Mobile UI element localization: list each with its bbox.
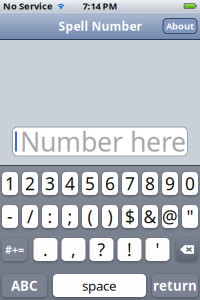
button[interactable]: 6 — [102, 172, 118, 195]
staticText: 6 — [105, 172, 115, 195]
button[interactable]: ; — [62, 205, 78, 228]
button[interactable]: 4 — [62, 172, 78, 195]
staticText: ? — [97, 238, 105, 261]
button[interactable]: 7 — [122, 172, 138, 195]
staticText: : — [47, 205, 52, 228]
staticText: return — [153, 277, 197, 294]
staticText: / — [27, 205, 33, 228]
button[interactable]: - — [2, 205, 18, 228]
button[interactable]: return — [152, 274, 198, 297]
staticText: ; — [67, 205, 72, 228]
staticText: - — [7, 205, 13, 228]
staticText: 5 — [85, 172, 95, 195]
button[interactable]: / — [22, 205, 38, 228]
button[interactable]: ! — [117, 238, 141, 261]
button[interactable]: . — [33, 238, 57, 261]
button[interactable]: ABC — [2, 274, 47, 297]
button[interactable]: 2 — [22, 172, 38, 195]
staticText: " — [186, 205, 193, 228]
button[interactable]: 8 — [142, 172, 158, 195]
button[interactable]: @ — [162, 205, 178, 228]
staticText: Number here — [20, 124, 186, 159]
button[interactable]: Delete — [176, 238, 198, 261]
staticText: #+= — [5, 242, 24, 257]
button[interactable]: ? — [89, 238, 113, 261]
staticText: No Service — [3, 0, 53, 12]
staticText: ! — [127, 238, 132, 261]
button[interactable]: ) — [102, 205, 118, 228]
staticText: @ — [162, 205, 178, 228]
staticText: , — [71, 238, 76, 261]
staticText: & — [143, 205, 156, 228]
staticText: 9 — [165, 172, 175, 195]
staticText: ABC — [11, 277, 38, 294]
button[interactable]: ( — [82, 205, 98, 228]
staticText: 7 — [125, 172, 135, 195]
button[interactable]: ' — [145, 238, 169, 261]
staticText: 0 — [185, 172, 195, 195]
button[interactable]: 3 — [42, 172, 58, 195]
button[interactable]: space — [53, 274, 146, 297]
staticText: ' — [155, 238, 159, 261]
button[interactable]: 1 — [2, 172, 18, 195]
staticText: 7:14 PM — [82, 0, 117, 12]
button[interactable]: 5 — [82, 172, 98, 195]
staticText: 2 — [25, 172, 35, 195]
staticText: Spell Number — [58, 18, 141, 34]
staticText: 8 — [145, 172, 155, 195]
staticText: 3 — [45, 172, 55, 195]
staticText: 1 — [5, 172, 15, 195]
staticText: space — [82, 277, 117, 294]
button[interactable]: 9 — [162, 172, 178, 195]
button[interactable]: " — [182, 205, 198, 228]
staticText: 4 — [65, 172, 75, 195]
button[interactable]: 0 — [182, 172, 198, 195]
button[interactable]: , — [61, 238, 85, 261]
button[interactable]: & — [142, 205, 158, 228]
button[interactable]: About — [163, 18, 197, 33]
staticText: About — [166, 20, 194, 32]
staticText: ) — [107, 205, 112, 228]
staticText: . — [43, 238, 48, 261]
staticText: $ — [125, 205, 135, 228]
button[interactable]: : — [42, 205, 58, 228]
button[interactable]: #+= — [2, 238, 27, 261]
button[interactable]: $ — [122, 205, 138, 228]
staticText: ( — [87, 205, 92, 228]
